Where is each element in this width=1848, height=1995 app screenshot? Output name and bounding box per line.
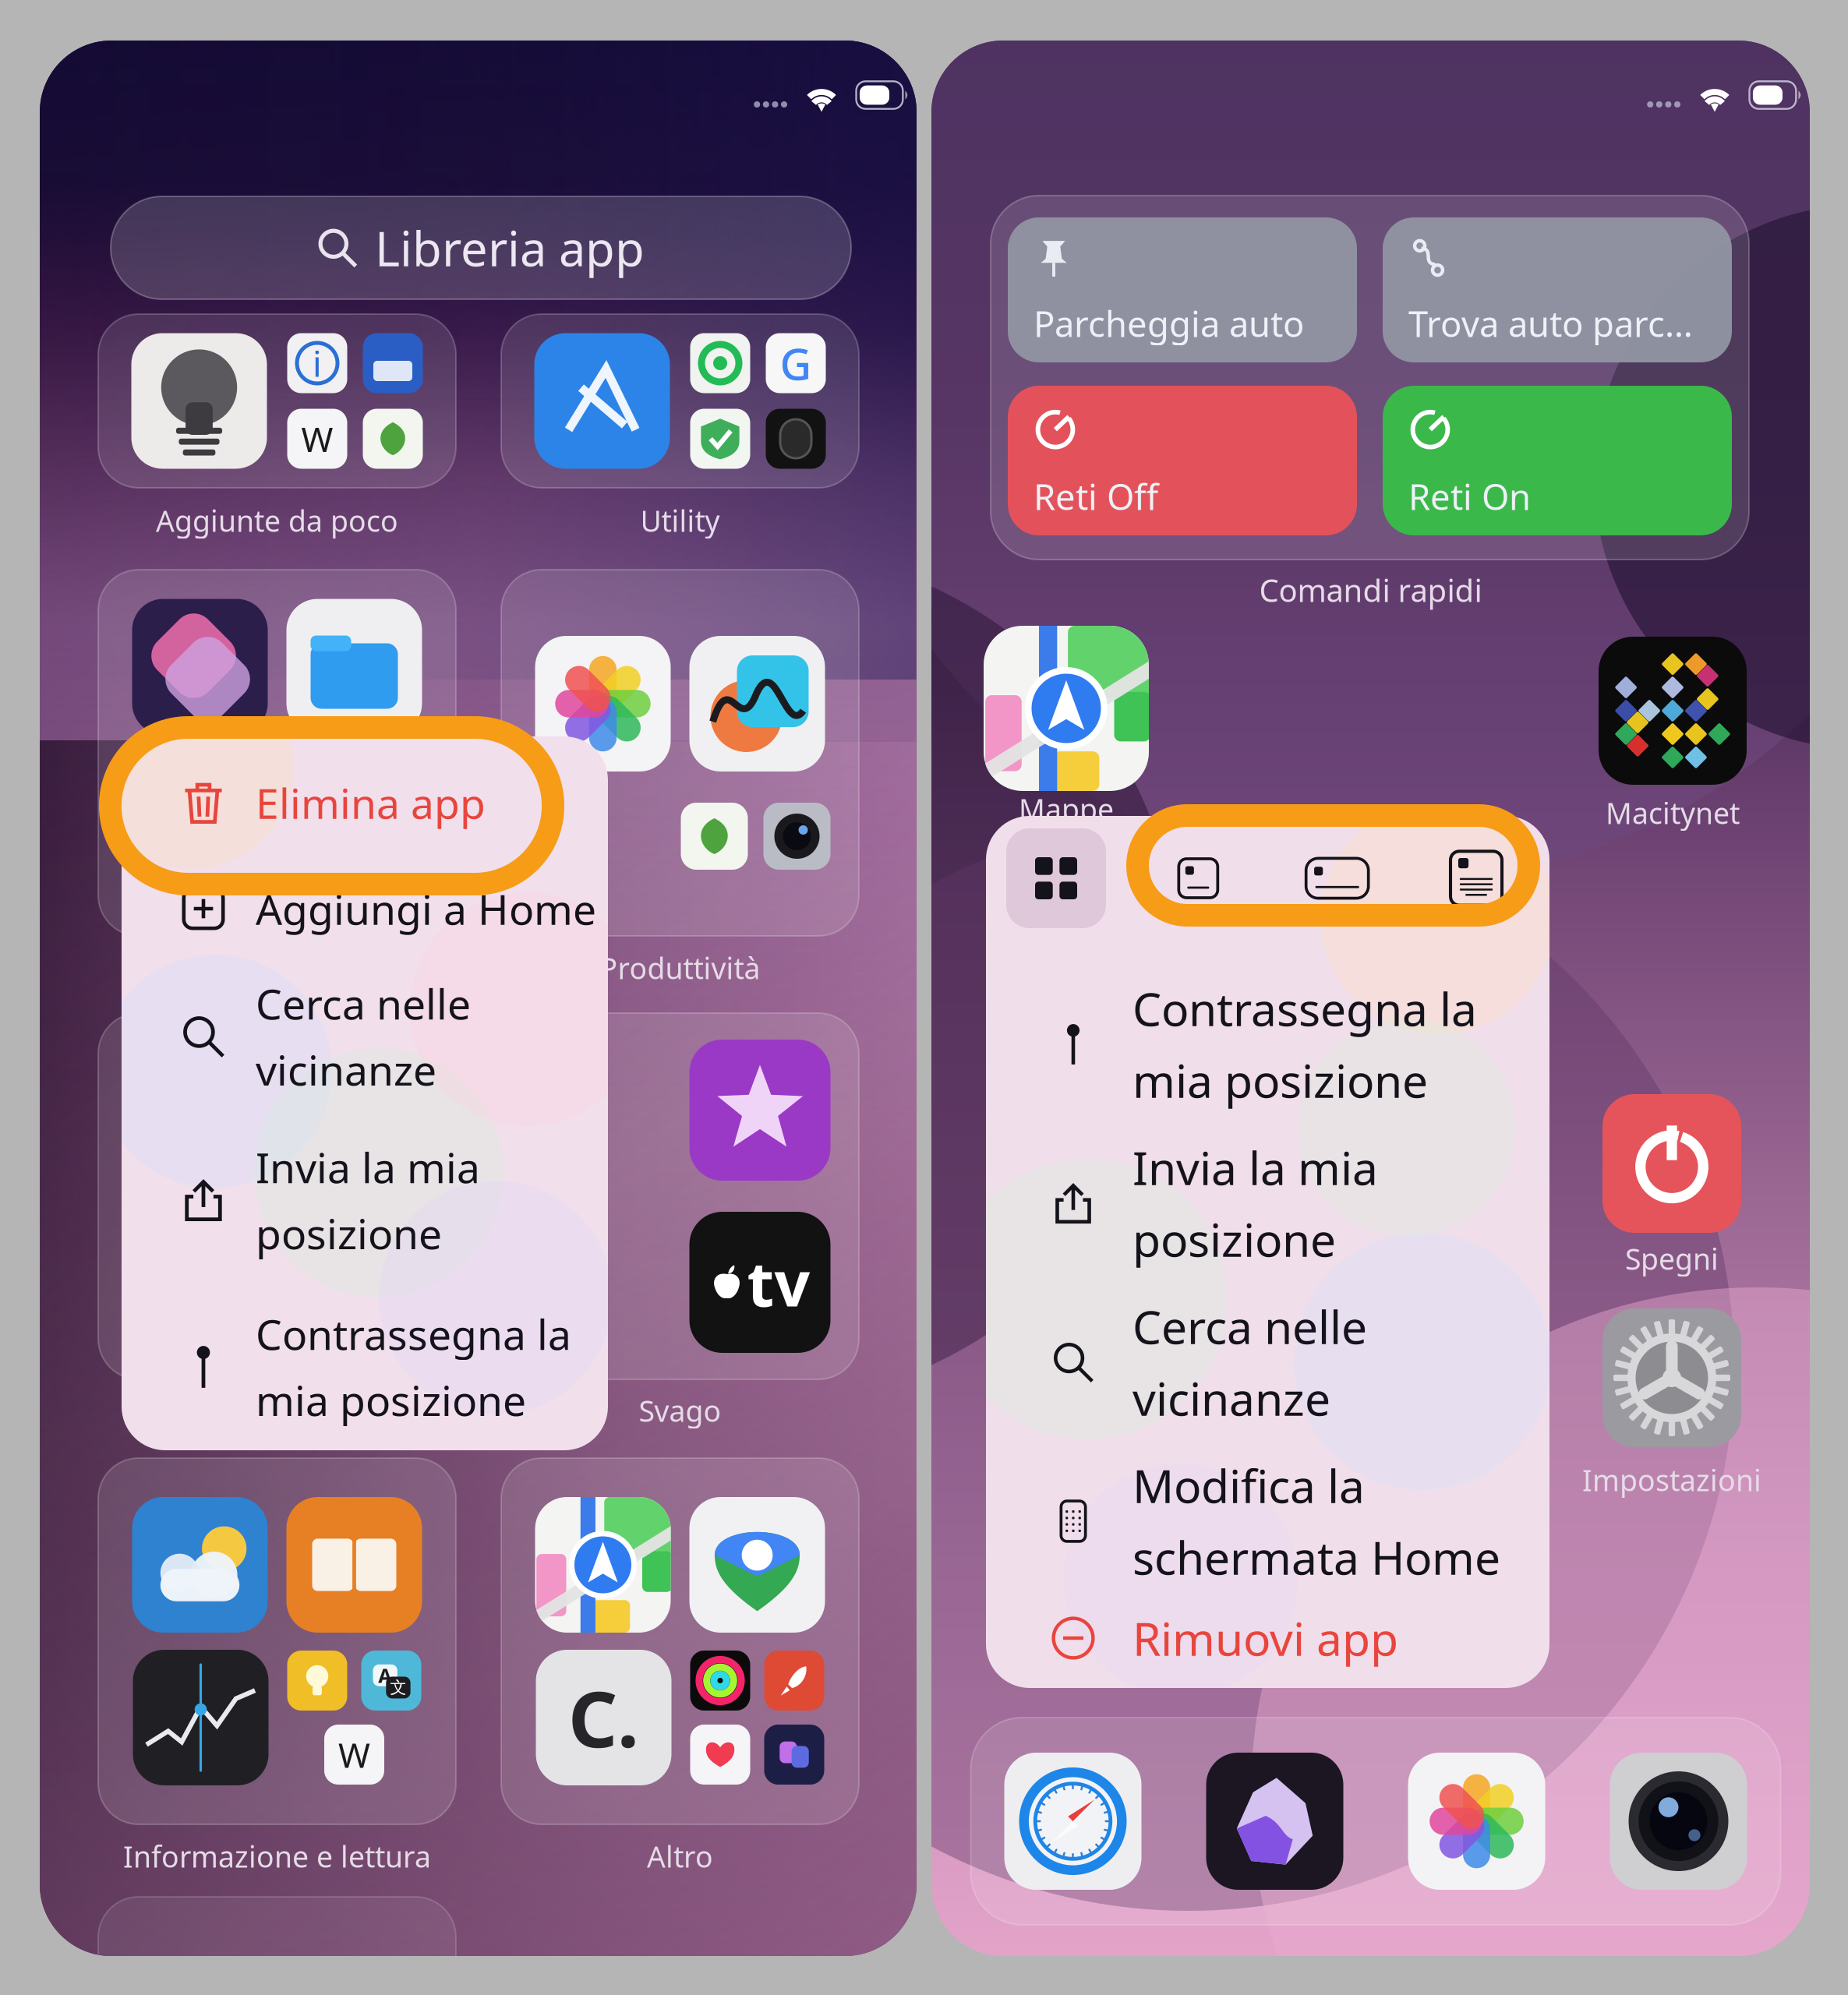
staticText: Spegni: [1625, 1239, 1719, 1278]
staticText: Svago: [639, 1391, 721, 1430]
button[interactable]: Invia la mia: [986, 1133, 1549, 1273]
staticText: posizione: [256, 1206, 442, 1261]
staticText: Libreria app: [375, 216, 645, 280]
staticText: Rimuovi app: [1132, 1608, 1398, 1668]
button[interactable]: Widget piccolo: [1151, 828, 1245, 928]
staticText: Mappe: [1019, 790, 1114, 828]
staticText: Aggiungi a Home: [256, 881, 596, 936]
button[interactable]: Contrassegna la: [122, 1297, 608, 1437]
staticText: Contrassegna la: [256, 1306, 571, 1361]
staticText: Reti On: [1408, 473, 1531, 520]
button[interactable]: Produttività: [98, 570, 456, 936]
button[interactable]: Informazione e lettura: [98, 1458, 456, 1824]
staticText: Invia la mia: [1132, 1137, 1378, 1198]
button[interactable]: Altro: [501, 1458, 859, 1824]
staticText: W: [338, 1732, 370, 1777]
staticText: Impostazioni: [1582, 1461, 1761, 1499]
button[interactable]: Icona app: [1006, 828, 1106, 928]
button[interactable]: Reti Off: [1008, 386, 1357, 535]
staticText: Utility: [640, 501, 720, 540]
staticText: Reti Off: [1034, 473, 1158, 520]
button[interactable]: Contrassegna la: [986, 974, 1549, 1114]
button[interactable]: Libreria app: [111, 196, 851, 299]
staticText: schermata Home: [1132, 1527, 1500, 1587]
staticText: Cerca nelle: [1132, 1296, 1367, 1357]
staticText: Macitynet: [1606, 793, 1740, 832]
button[interactable]: Foto: [1408, 1753, 1545, 1890]
staticText: A: [378, 1662, 392, 1688]
button[interactable]: Macitynet: [1599, 637, 1747, 785]
staticText: i: [313, 340, 322, 387]
button[interactable]: Cerca nelle: [122, 966, 608, 1107]
button[interactable]: Parcheggia auto: [1008, 217, 1357, 362]
staticText: Parcheggia auto: [1034, 300, 1304, 347]
staticText: Altro: [647, 1837, 713, 1876]
staticText: mia posizione: [1132, 1050, 1428, 1110]
button[interactable]: Invia la mia: [122, 1130, 608, 1270]
button[interactable]: Widget medio: [1290, 828, 1384, 928]
button[interactable]: Produttività: [501, 570, 859, 936]
button[interactable]: Fotocamera: [1610, 1753, 1747, 1890]
staticText: vicinanze: [1132, 1368, 1330, 1428]
button[interactable]: Safari: [1004, 1753, 1141, 1890]
staticText: tv: [747, 1241, 810, 1324]
button[interactable]: Spegni: [1602, 1094, 1741, 1233]
staticText: Invia la mia: [256, 1139, 480, 1195]
staticText: Informazione e lettura: [123, 1837, 431, 1876]
button[interactable]: Widget grande: [1429, 828, 1523, 928]
button[interactable]: Elimina app: [122, 760, 608, 846]
staticText: vicinanze: [256, 1042, 436, 1097]
staticText: Cerca nelle: [256, 976, 471, 1031]
button[interactable]: Utility: [501, 314, 859, 488]
staticText: Contrassegna la: [1132, 978, 1477, 1039]
staticText: Comandi rapidi: [1259, 569, 1482, 611]
staticText: posizione: [1132, 1209, 1336, 1269]
button[interactable]: Svago: [501, 1013, 859, 1379]
button[interactable]: Mappe: [984, 626, 1149, 791]
staticText: G: [780, 334, 812, 392]
staticText: Trova auto parc…: [1408, 300, 1693, 347]
staticText: W: [301, 416, 333, 461]
button[interactable]: Modifica la: [986, 1451, 1549, 1591]
button[interactable]: Aggiungi a Home: [122, 866, 608, 952]
button[interactable]: Trova auto parc…: [1383, 217, 1732, 362]
button[interactable]: Cerca nelle: [986, 1292, 1549, 1432]
button[interactable]: Aggiunte da poco: [98, 314, 456, 488]
button[interactable]: Bear: [1206, 1753, 1343, 1890]
staticText: Elimina app: [256, 775, 486, 830]
staticText: mia posizione: [256, 1372, 526, 1428]
button[interactable]: Impostazioni: [1602, 1308, 1741, 1447]
button[interactable]: Cartella: [98, 1013, 456, 1379]
button[interactable]: Rimuovi app: [986, 1595, 1549, 1681]
button[interactable]: Reti On: [1383, 386, 1732, 535]
staticText: 文: [390, 1677, 406, 1698]
staticText: Aggiunte da poco: [156, 501, 398, 540]
staticText: C.: [568, 1667, 639, 1769]
staticText: Produttività: [600, 949, 760, 987]
staticText: Modifica la: [1132, 1455, 1365, 1516]
